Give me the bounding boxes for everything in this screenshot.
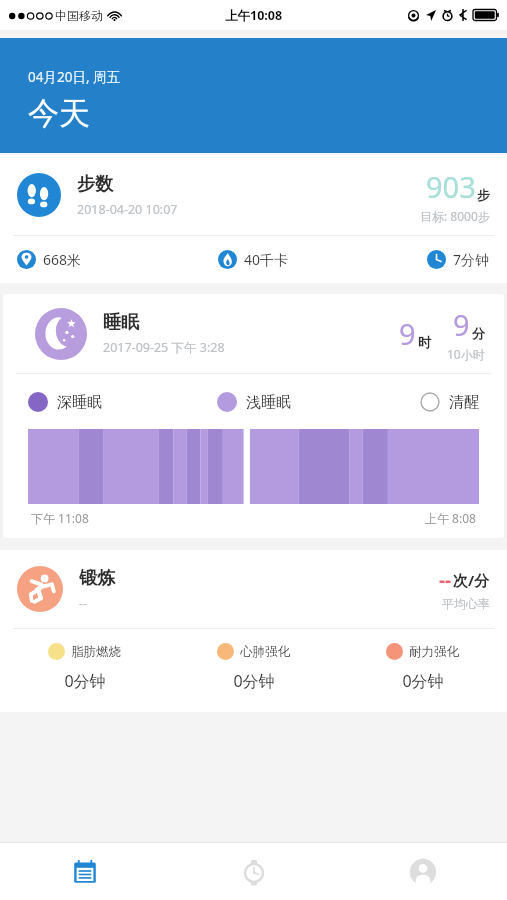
button[interactable]: 40千卡 — [218, 250, 289, 269]
staticText: 9 — [399, 314, 416, 353]
staticText: 2017-09-25 下午 3:28 — [103, 339, 225, 356]
staticText: 0分钟 — [402, 670, 444, 692]
staticText: 2018-04-20 10:07 — [77, 201, 178, 218]
button[interactable]: 浅睡眠 — [217, 392, 291, 412]
button[interactable]: 步数 — [0, 155, 507, 283]
staticText: 10小时 — [447, 346, 485, 362]
staticText: 次/分 — [453, 570, 490, 590]
button[interactable]: Device — [169, 843, 338, 900]
staticText: -- — [79, 595, 88, 612]
staticText: 时 — [418, 334, 431, 350]
staticText: 浅睡眠 — [246, 393, 291, 412]
button[interactable]: Profile — [338, 843, 507, 900]
staticText: 分 — [472, 325, 485, 341]
staticText: 步 — [477, 187, 490, 203]
staticText: 睡眠 — [103, 311, 139, 334]
staticText: 清醒 — [449, 393, 479, 412]
staticText: 目标: 8000步 — [420, 208, 490, 224]
staticText: 668米 — [43, 250, 82, 269]
button[interactable]: 睡眠 — [3, 294, 504, 538]
staticText: 平均心率 — [442, 596, 490, 611]
staticText: -- — [439, 567, 452, 593]
staticText: 耐力强化 — [409, 644, 459, 660]
button[interactable]: 668米 — [17, 250, 82, 269]
staticText: 0分钟 — [233, 670, 275, 692]
staticText: 脂肪燃烧 — [71, 644, 121, 660]
staticText: 中国移动 — [55, 8, 103, 23]
button[interactable]: Today — [0, 843, 169, 900]
button[interactable]: 清醒 — [420, 392, 479, 412]
staticText: 今天 — [28, 94, 90, 133]
staticText: 04月20日, 周五 — [28, 68, 121, 86]
staticText: 锻炼 — [79, 567, 115, 590]
staticText: 9 — [453, 305, 470, 344]
button[interactable]: 7分钟 — [427, 250, 490, 269]
staticText: 心肺强化 — [240, 644, 290, 660]
button[interactable]: 耐力强化 — [338, 643, 507, 692]
staticText: 深睡眠 — [57, 393, 102, 412]
button[interactable]: 04月20日, 周五 — [0, 38, 507, 153]
staticText: 步数 — [77, 173, 113, 196]
staticText: 0分钟 — [64, 670, 106, 692]
button[interactable]: 脂肪燃烧 — [0, 643, 169, 692]
button[interactable]: 心肺强化 — [169, 643, 338, 692]
staticText: 下午 11:08 — [31, 510, 89, 526]
staticText: 7分钟 — [453, 250, 490, 269]
staticText: 上午10:08 — [225, 7, 283, 24]
button[interactable]: 锻炼 — [0, 550, 507, 712]
button[interactable]: 深睡眠 — [28, 392, 102, 412]
staticText: 上午 8:08 — [425, 510, 476, 526]
staticText: 903 — [426, 167, 476, 206]
staticText: 40千卡 — [244, 250, 289, 269]
